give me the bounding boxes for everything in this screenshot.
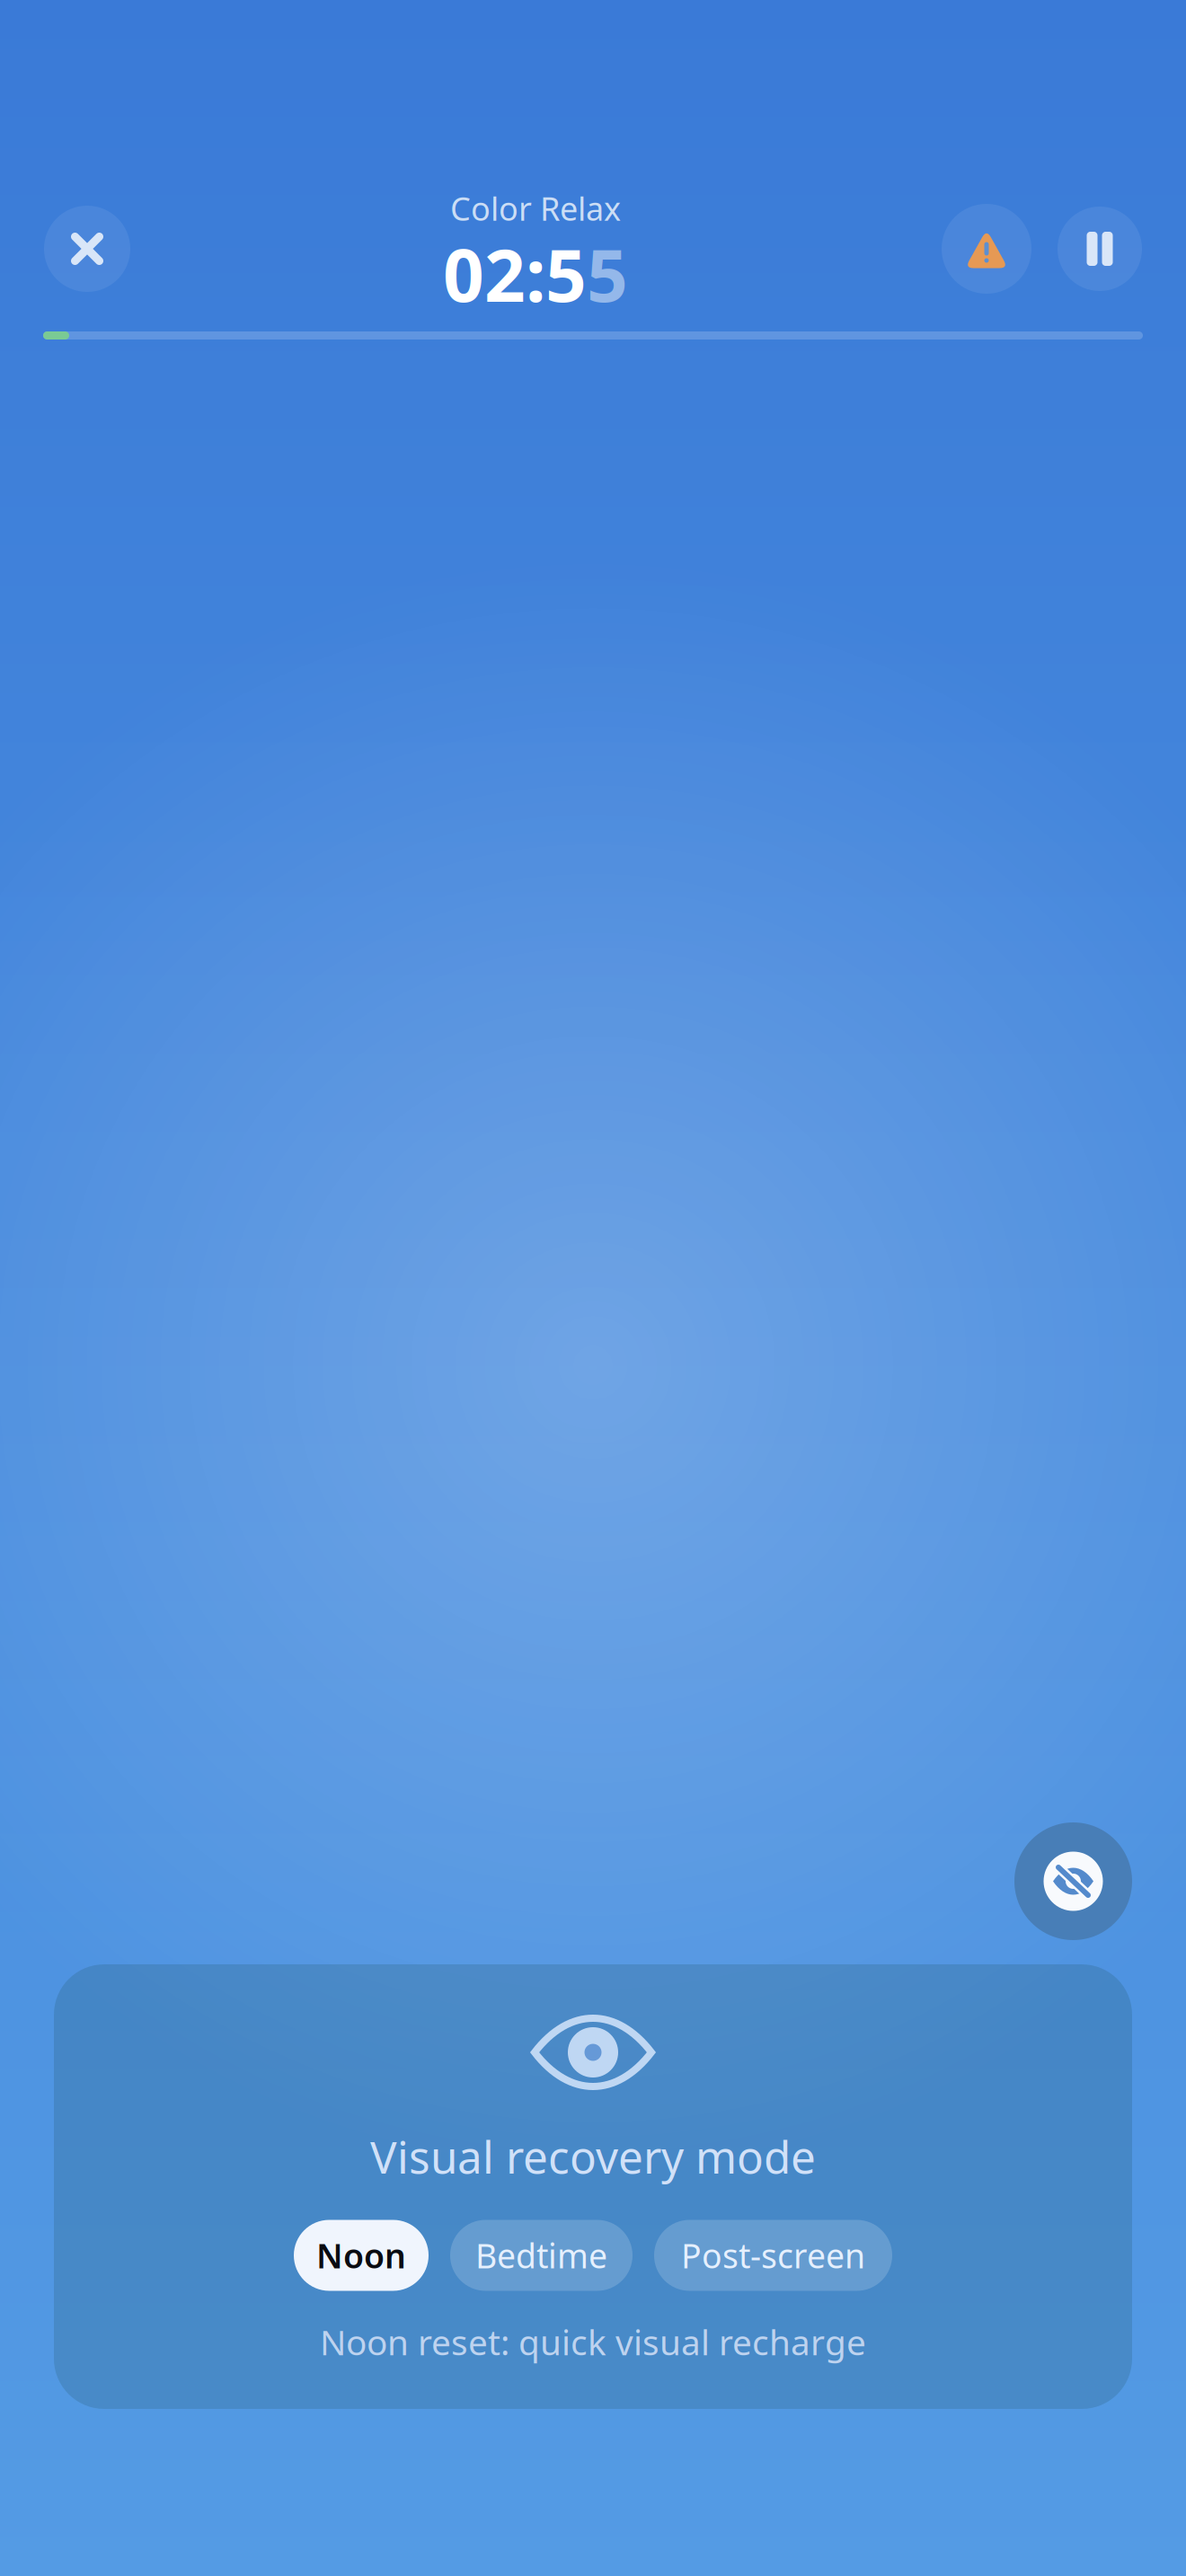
button[interactable]: Post-screen xyxy=(654,2220,892,2291)
staticText: 02:5 xyxy=(443,226,587,322)
button[interactable]: Pause xyxy=(1058,207,1142,291)
button[interactable]: Warning xyxy=(942,204,1031,294)
staticText: 5 xyxy=(587,226,628,322)
staticText: Color Relax xyxy=(450,187,621,230)
staticText: Noon reset: quick visual recharge xyxy=(320,2319,866,2365)
button[interactable]: Bedtime xyxy=(450,2220,633,2291)
staticText: Noon xyxy=(316,2233,406,2278)
button[interactable]: Hide interface xyxy=(1014,1822,1132,1940)
button[interactable]: Close xyxy=(44,206,130,292)
staticText: Visual recovery mode xyxy=(370,2127,816,2186)
staticText: Post-screen xyxy=(681,2233,865,2278)
button[interactable]: Noon xyxy=(294,2220,429,2291)
staticText: Bedtime xyxy=(475,2233,607,2278)
